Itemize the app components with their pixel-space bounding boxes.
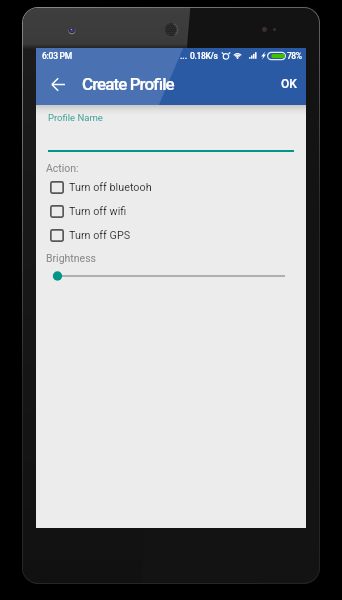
button[interactable]: Turn off bluetooh xyxy=(36,177,306,198)
staticText: Action: xyxy=(46,162,79,174)
button[interactable]: Brightness slider xyxy=(36,268,306,284)
staticText: Turn off GPS xyxy=(69,229,131,242)
button[interactable]: Turn off GPS xyxy=(36,225,306,246)
staticText: 6:03 PM xyxy=(42,51,72,61)
button[interactable]: Turn off wifi xyxy=(36,201,306,222)
staticText: 0.18K/s xyxy=(190,51,218,61)
staticText: Create Profile xyxy=(82,74,174,94)
staticText: ... xyxy=(180,51,188,61)
button[interactable]: OK xyxy=(272,66,306,102)
staticText: Turn off wifi xyxy=(69,205,127,218)
staticText: Profile Name xyxy=(48,112,103,123)
button[interactable]: Navigate up xyxy=(40,63,76,105)
staticText: Turn off bluetooh xyxy=(69,181,152,194)
staticText: 78% xyxy=(287,51,302,61)
staticText: OK xyxy=(281,77,297,91)
staticText: Brightness xyxy=(46,252,96,264)
